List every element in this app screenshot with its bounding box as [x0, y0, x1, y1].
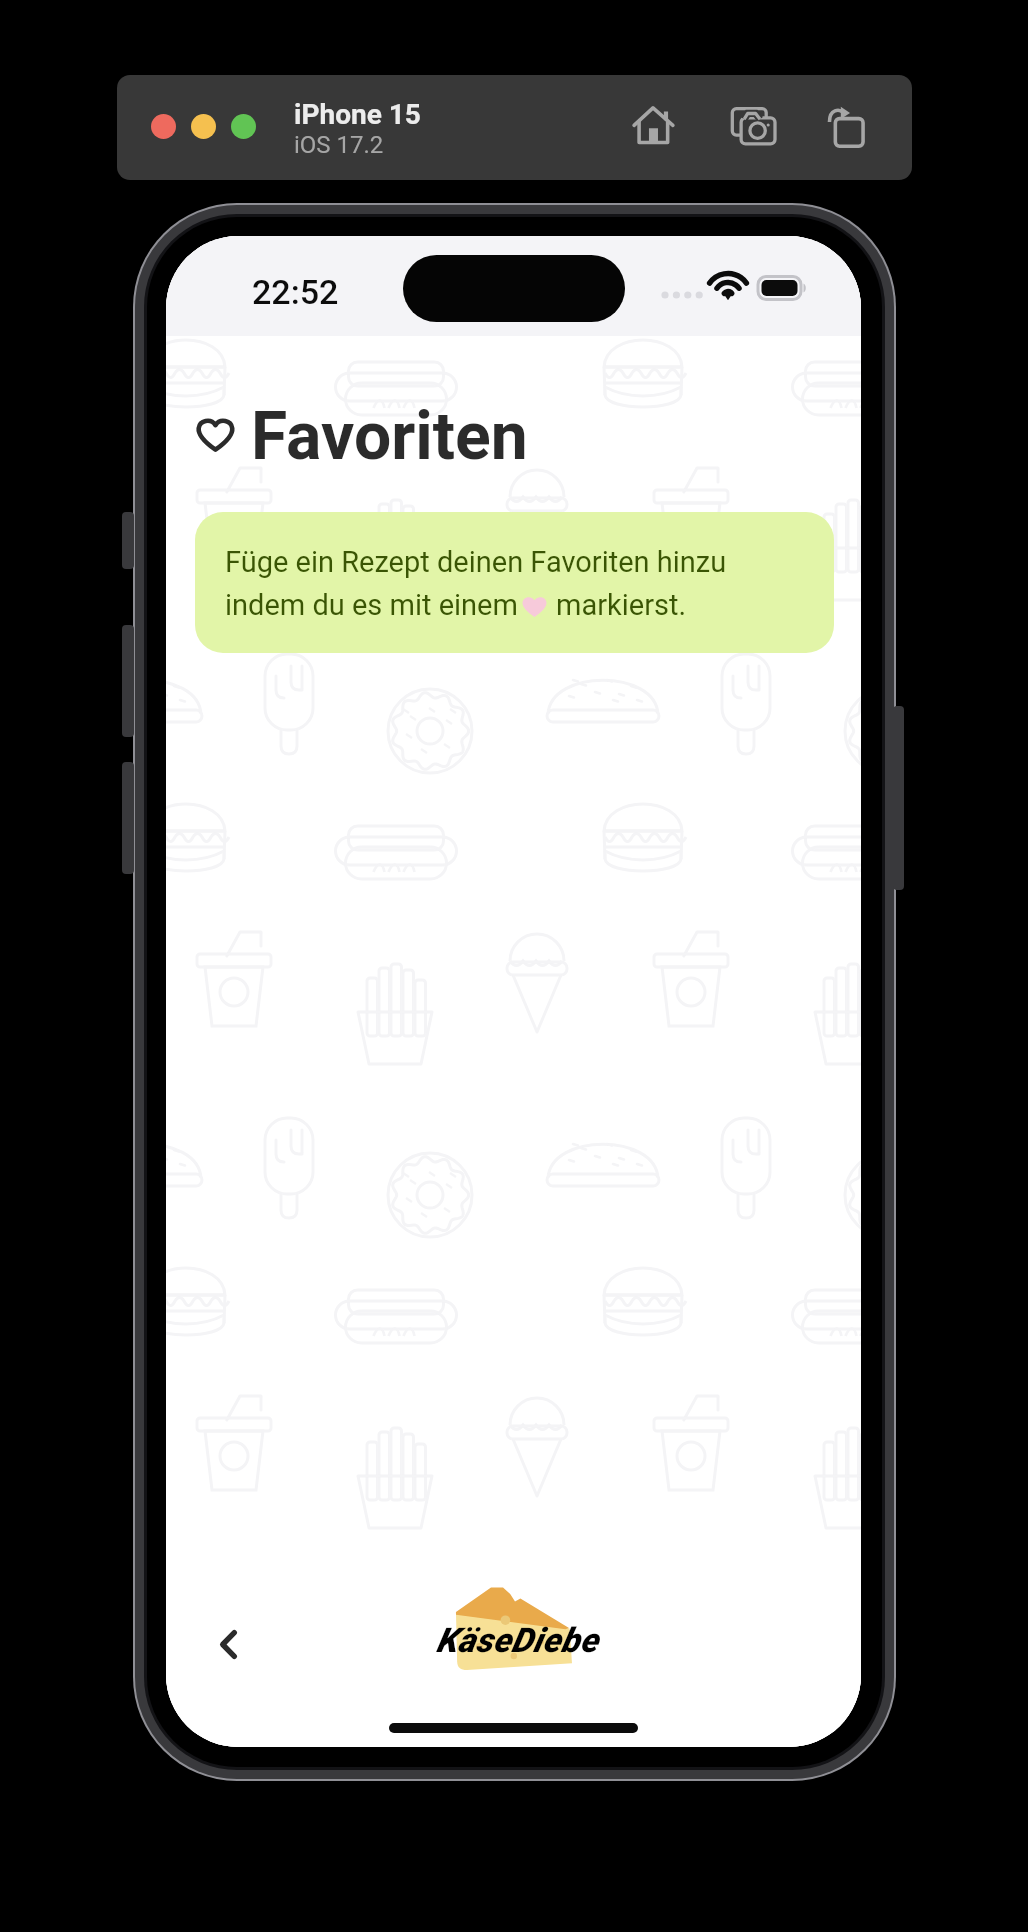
button[interactable]: Volume down	[122, 762, 134, 874]
button[interactable]: Füge ein Rezept deinen Favoriten hinzu	[195, 512, 834, 653]
button[interactable]: Screenshot	[731, 106, 775, 150]
staticText: indem du es mit einem	[225, 588, 518, 622]
button[interactable]: Volume up	[122, 625, 134, 737]
button[interactable]: Home	[633, 106, 675, 148]
button[interactable]: Power	[893, 706, 904, 890]
button[interactable]: Rotate	[824, 106, 866, 148]
staticText: KäseDiebe	[436, 1620, 599, 1660]
button[interactable]: Back	[200, 1616, 256, 1672]
staticText: iPhone 15	[294, 98, 421, 131]
staticText: Favoriten	[251, 398, 528, 475]
staticText: Füge ein Rezept deinen Favoriten hinzu	[225, 545, 727, 579]
button[interactable]: Close	[151, 114, 176, 139]
staticText: 22:52	[252, 272, 339, 312]
staticText: markierst.	[556, 588, 687, 622]
button[interactable]: Maximize	[231, 114, 256, 139]
button[interactable]: Minimize	[191, 114, 216, 139]
staticText: iOS 17.2	[294, 131, 384, 159]
button[interactable]: Mute switch	[122, 512, 134, 569]
